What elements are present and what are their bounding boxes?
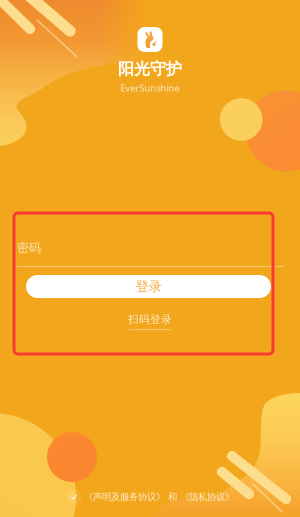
staticText: 《隐私协议》 <box>180 491 234 503</box>
staticText: 密码 <box>17 241 41 255</box>
button[interactable]: Agree to terms <box>66 489 82 505</box>
button[interactable]: 扫码登录 <box>110 313 190 330</box>
button[interactable]: 《隐私协议》 <box>180 491 234 503</box>
button[interactable]: 登录 <box>26 275 271 298</box>
staticText: 阳光守护 <box>118 59 182 79</box>
staticText: 登录 <box>135 278 161 295</box>
staticText: 扫码登录 <box>128 313 172 326</box>
staticText: 和 <box>165 491 180 503</box>
staticText: 《声明及服务协议》 <box>84 491 165 503</box>
button[interactable]: 《声明及服务协议》 <box>84 491 165 503</box>
staticText: EverSunshine <box>120 82 179 94</box>
